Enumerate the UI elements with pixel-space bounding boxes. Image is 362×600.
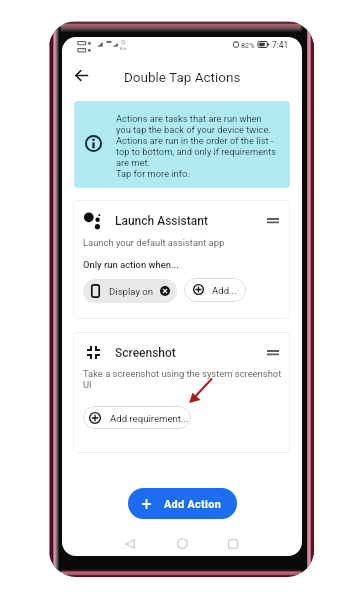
staticText: Only run action when... [83, 259, 179, 270]
staticText: Double Tap Actions [124, 69, 241, 85]
button[interactable]: Back [69, 63, 93, 87]
button[interactable]: Add... [184, 278, 246, 302]
button[interactable]: Back [119, 533, 141, 555]
other: Remove [160, 286, 170, 296]
staticText: K/s [120, 46, 127, 51]
button[interactable]: Actions are tasks that are run when you … [74, 101, 290, 188]
staticText: Take a screenshot using the system scree… [83, 368, 282, 390]
staticText: 7:41 [272, 40, 289, 50]
staticText: Display on [109, 286, 154, 297]
staticText: Add Action [164, 498, 222, 511]
button[interactable]: Recent apps [222, 533, 244, 555]
staticText: Launch your default assistant app [83, 237, 225, 248]
staticText: 82% [241, 41, 255, 50]
button[interactable]: Add Action [128, 488, 237, 519]
staticText: Screenshot [115, 346, 176, 360]
staticText: Add requirement... [110, 413, 189, 424]
staticText: Actions are tasks that are run when you … [116, 113, 277, 179]
button[interactable]: Display on [83, 279, 177, 303]
other: Reorder [267, 350, 279, 357]
button[interactable]: Launch Assistant [73, 200, 290, 319]
staticText: Add... [212, 285, 237, 296]
staticText: Launch Assistant [115, 214, 208, 228]
button[interactable]: Home [171, 532, 193, 554]
button[interactable]: Add requirement... [83, 406, 191, 429]
other: Reorder [267, 218, 279, 225]
button[interactable]: Screenshot [73, 332, 290, 453]
